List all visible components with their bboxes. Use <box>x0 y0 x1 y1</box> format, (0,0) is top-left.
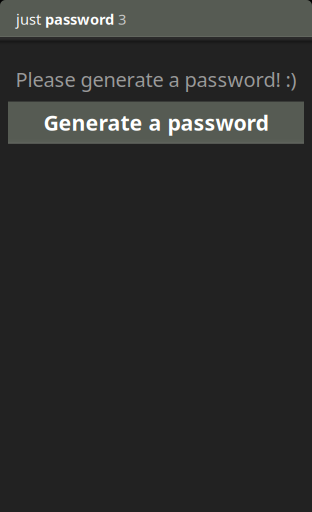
staticText: Please generate a password! :) <box>15 66 296 93</box>
staticText: Generate a password <box>43 108 268 137</box>
staticText: password <box>45 9 114 29</box>
staticText: 3 <box>114 9 126 29</box>
button[interactable]: Generate a password <box>8 102 304 144</box>
staticText: just <box>16 9 45 29</box>
